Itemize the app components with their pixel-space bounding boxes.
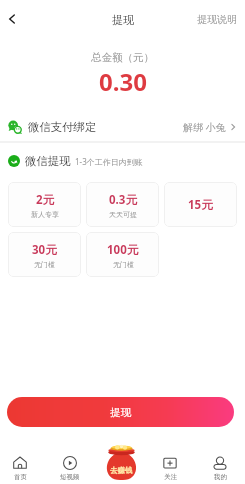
button[interactable]: 提现 xyxy=(7,397,234,427)
button[interactable]: 30元 xyxy=(8,232,81,277)
staticText: 短视频 xyxy=(60,473,80,481)
button[interactable]: 关注 xyxy=(148,456,192,481)
button[interactable]: Back xyxy=(0,2,23,36)
staticText: 首页 xyxy=(14,473,27,481)
staticText: 无门槛 xyxy=(34,260,55,269)
staticText: 关注 xyxy=(164,473,177,481)
staticText: 100元 xyxy=(107,242,139,258)
button[interactable]: 我的 xyxy=(198,456,242,481)
staticText: 微信提现 xyxy=(25,154,71,168)
staticText: 微信支付绑定 xyxy=(28,120,97,134)
button[interactable]: 15元 xyxy=(164,182,237,227)
staticText: 0.3元 xyxy=(109,192,137,208)
staticText: 天天可提 xyxy=(109,210,137,219)
staticText: 提现 xyxy=(110,406,131,419)
staticText: 新人专享 xyxy=(31,210,59,219)
staticText: 无门槛 xyxy=(113,260,134,269)
staticText: 我的 xyxy=(214,473,227,481)
staticText: 0.30 xyxy=(99,65,147,98)
staticText: 提现说明 xyxy=(197,13,237,26)
button[interactable]: 首页 xyxy=(0,456,42,481)
staticText: 15元 xyxy=(188,197,213,213)
button[interactable]: 2元 xyxy=(8,182,81,227)
button[interactable]: 微信支付绑定 xyxy=(0,114,245,140)
button[interactable]: 提现说明 xyxy=(189,7,245,32)
button[interactable]: 去赚钱 xyxy=(104,443,139,480)
staticText: 1-3个工作日内到账 xyxy=(75,156,143,167)
staticText: 总金额（元） xyxy=(91,51,154,64)
staticText: 去赚钱 xyxy=(110,466,133,475)
button[interactable]: 100元 xyxy=(86,232,159,277)
staticText: 提现 xyxy=(112,13,134,27)
staticText: 2元 xyxy=(36,192,55,208)
staticText: 30元 xyxy=(32,242,57,258)
button[interactable]: 0.3元 xyxy=(86,182,159,227)
button[interactable]: 短视频 xyxy=(48,456,92,481)
staticText: 解绑 小兔 xyxy=(183,120,226,134)
